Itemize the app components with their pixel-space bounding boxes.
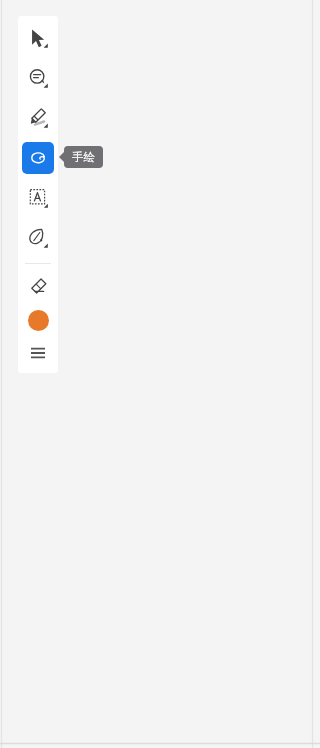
button[interactable]: Ink pen bbox=[18, 218, 58, 258]
staticText: 手绘 bbox=[72, 150, 95, 164]
button[interactable]: Highlighter bbox=[18, 98, 58, 138]
button[interactable]: More options bbox=[18, 336, 58, 370]
button[interactable]: Freehand bbox=[18, 138, 58, 178]
button[interactable]: Select bbox=[18, 18, 58, 58]
button[interactable]: Text box bbox=[18, 178, 58, 218]
button[interactable]: Colour bbox=[18, 304, 58, 336]
button[interactable]: Eraser bbox=[18, 268, 58, 304]
button[interactable]: Lasso select bbox=[18, 58, 58, 98]
